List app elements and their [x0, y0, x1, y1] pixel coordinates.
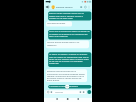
staticText: Claro que si permitame revisar el estado…: [49, 30, 90, 37]
button[interactable]: [48, 30, 91, 40]
button[interactable]: Voice call: [83, 5, 88, 10]
button[interactable]: Scroll to bottom: [65, 84, 69, 88]
button[interactable]: Back: [45, 5, 50, 10]
button[interactable]: [46, 21, 72, 26]
button[interactable]: [46, 69, 87, 82]
staticText: Perfecto muchas gracias por la informaci…: [47, 70, 86, 81]
staticText: Si todavia es posible cambiarla: [49, 85, 90, 88]
button[interactable]: [48, 11, 91, 20]
button[interactable]: Video call: [78, 5, 83, 10]
button[interactable]: Message: [46, 90, 87, 94]
button[interactable]: [48, 52, 91, 67]
staticText: Hola buenas tardes: [47, 22, 71, 25]
button[interactable]: Recent apps: [75, 96, 81, 101]
staticText: Soporte Tecnico: [56, 6, 78, 9]
staticText: Muchas gracias quedo atento a su respues…: [47, 41, 88, 46]
button[interactable]: [46, 41, 89, 49]
button[interactable]: Back: [54, 96, 60, 101]
button[interactable]: [48, 85, 91, 89]
staticText: Mensaje: [55, 91, 69, 94]
button[interactable]: Send voice message: [87, 90, 91, 94]
button[interactable]: Home: [65, 96, 71, 101]
staticText: Ya revise su pedido y aparece en transit…: [49, 53, 90, 64]
button[interactable]: More options: [88, 5, 93, 10]
button[interactable]: [51, 5, 77, 10]
staticText: Buenas tardes necesito ayuda con un pedi…: [49, 12, 90, 19]
